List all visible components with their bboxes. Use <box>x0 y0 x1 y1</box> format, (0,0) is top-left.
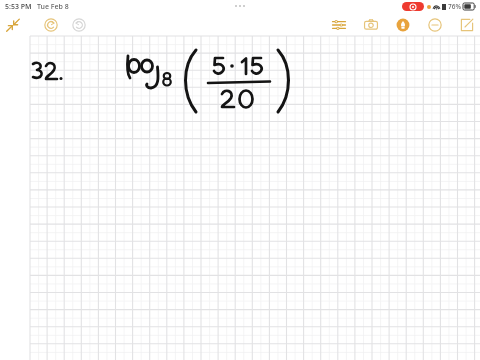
button[interactable]: Eraser <box>426 16 444 34</box>
button[interactable]: Redo <box>70 16 88 34</box>
button[interactable]: Options <box>330 16 348 34</box>
button[interactable]: Camera <box>362 16 380 34</box>
button[interactable]: Undo <box>42 16 60 34</box>
staticText: 5:53 PM <box>5 2 32 12</box>
button[interactable]: Compose <box>458 16 476 34</box>
button[interactable]: Collapse <box>4 16 22 34</box>
staticText: Tue Feb 8 <box>37 2 69 12</box>
button[interactable]: Pen <box>394 16 412 34</box>
staticText: 76% <box>448 2 461 11</box>
